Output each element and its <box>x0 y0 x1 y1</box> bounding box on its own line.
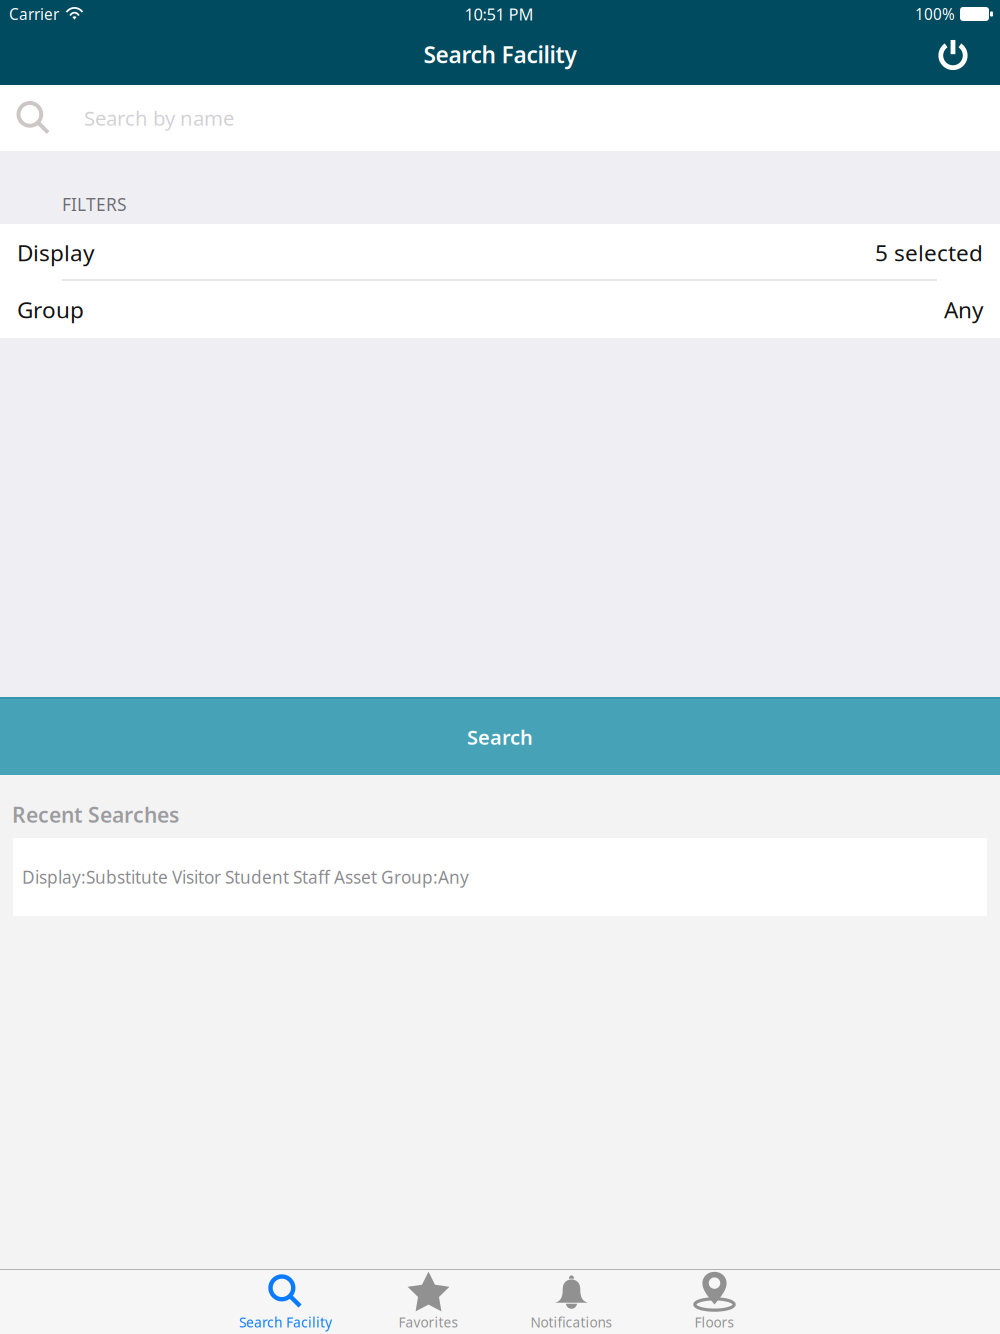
button[interactable]: Search <box>0 697 1000 775</box>
button[interactable]: Search Facility <box>214 1270 357 1334</box>
button[interactable]: Group <box>0 281 1000 338</box>
button[interactable]: Display <box>0 224 1000 281</box>
staticText: Display:Substitute Visitor Student Staff… <box>22 865 469 889</box>
staticText: 10:51 PM <box>464 3 533 25</box>
staticText: Any <box>944 294 983 325</box>
staticText: Notifications <box>530 1313 612 1331</box>
button[interactable]: Display:Substitute Visitor Student Staff… <box>0 838 1000 916</box>
staticText: Group <box>17 294 84 325</box>
staticText: Search <box>467 723 533 751</box>
button[interactable]: Log out <box>925 29 981 83</box>
button[interactable]: Favorites <box>357 1270 500 1334</box>
staticText: Carrier <box>9 4 59 24</box>
staticText: 5 selected <box>875 237 983 268</box>
staticText: Display <box>17 237 94 268</box>
staticText: Recent Searches <box>12 800 179 829</box>
button[interactable]: Floors <box>643 1270 786 1334</box>
staticText: Favorites <box>398 1313 458 1331</box>
staticText: FILTERS <box>62 192 127 216</box>
staticText: Search Facility <box>239 1313 332 1331</box>
staticText: Search by name <box>84 104 234 132</box>
staticText: 100% <box>915 4 955 24</box>
staticText: Search Facility <box>423 39 576 70</box>
staticText: Floors <box>694 1313 734 1331</box>
button[interactable]: Notifications <box>500 1270 643 1334</box>
